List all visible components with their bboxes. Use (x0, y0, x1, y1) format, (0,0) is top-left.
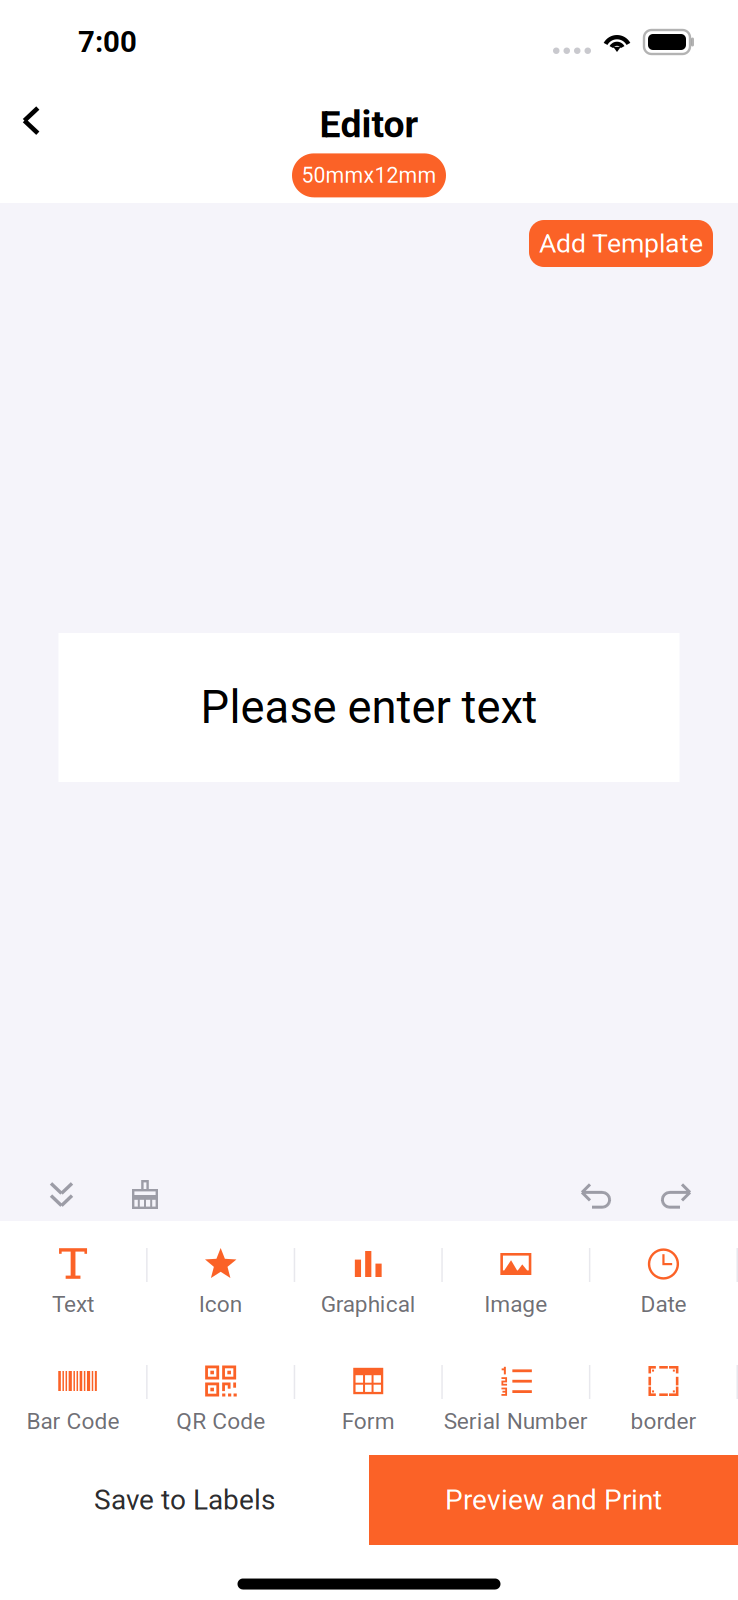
staticText: border (630, 1408, 696, 1435)
staticText: Please enter text (200, 681, 537, 734)
staticText: Form (342, 1408, 395, 1435)
button[interactable]: Back (0, 88, 68, 154)
staticText: Preview and Print (445, 1484, 662, 1516)
button[interactable]: Undo (556, 1156, 637, 1217)
button[interactable]: Save to Labels (0, 1455, 369, 1545)
button[interactable]: Date (590, 1221, 736, 1338)
staticText: Icon (199, 1291, 243, 1318)
staticText: Image (484, 1291, 547, 1318)
staticText: Text (52, 1291, 94, 1318)
button[interactable]: Graphical (295, 1221, 441, 1338)
staticText: Editor (319, 103, 418, 146)
button[interactable]: Collapse panel (24, 1156, 99, 1217)
button[interactable]: Text (0, 1221, 146, 1338)
button[interactable]: Icon (148, 1221, 294, 1338)
button[interactable]: Preview and Print (369, 1455, 738, 1545)
button[interactable]: Add Template (529, 220, 713, 267)
button[interactable]: QR Code (148, 1338, 294, 1455)
button[interactable]: border (590, 1338, 736, 1455)
button[interactable]: Brush (99, 1156, 186, 1217)
staticText: Bar Code (27, 1408, 120, 1435)
staticText: 50mmx12mm (301, 163, 436, 188)
staticText: QR Code (176, 1408, 265, 1435)
staticText: Graphical (321, 1291, 416, 1318)
button[interactable]: 50mmx12mm (292, 153, 446, 197)
staticText: 7:00 (78, 25, 137, 59)
staticText: Add Template (539, 228, 703, 259)
staticText: Save to Labels (94, 1484, 275, 1516)
button[interactable]: Bar Code (0, 1338, 146, 1455)
button[interactable]: Form (295, 1338, 441, 1455)
button[interactable]: Image (443, 1221, 589, 1338)
button[interactable]: Redo (637, 1156, 714, 1217)
staticText: Serial Number (444, 1408, 588, 1435)
staticText: Date (640, 1291, 686, 1318)
button[interactable]: Serial Number (443, 1338, 589, 1455)
